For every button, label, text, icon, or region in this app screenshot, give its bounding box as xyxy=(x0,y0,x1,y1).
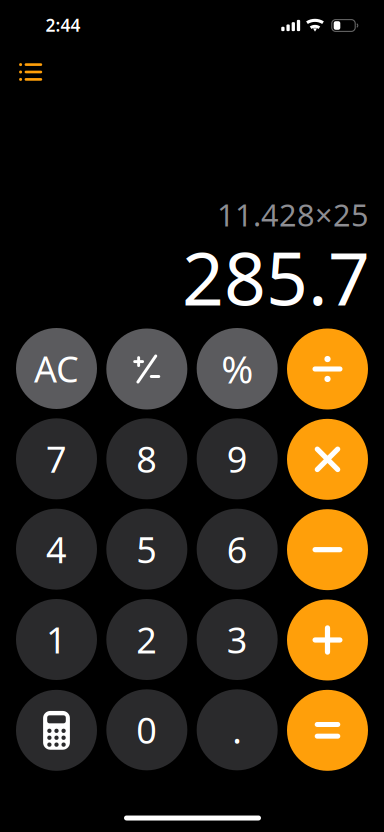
button[interactable]: Plus Minus xyxy=(106,328,187,409)
button[interactable]: 3 xyxy=(197,599,278,680)
staticText: 3 xyxy=(227,616,248,663)
button[interactable]: Subtract xyxy=(287,509,368,590)
button[interactable]: Divide xyxy=(287,328,368,409)
button[interactable]: 1 xyxy=(16,599,97,680)
button[interactable]: 8 xyxy=(106,418,187,499)
staticText: % xyxy=(221,343,253,394)
staticText: 8 xyxy=(136,435,157,483)
button[interactable]: Add xyxy=(287,599,368,680)
staticText: 5 xyxy=(136,525,157,573)
button[interactable]: % xyxy=(197,328,278,409)
staticText: 2:44 xyxy=(45,13,80,36)
staticText: 1 xyxy=(46,616,67,663)
button[interactable]: 2 xyxy=(106,599,187,680)
staticText: AC xyxy=(34,345,79,392)
staticText: 2 xyxy=(136,616,157,663)
staticText: 285.7 xyxy=(182,228,370,326)
staticText: . xyxy=(232,706,242,754)
staticText: 9 xyxy=(227,435,248,483)
button[interactable]: Calculator xyxy=(16,690,97,771)
button[interactable]: 9 xyxy=(197,418,278,499)
button[interactable]: Equals xyxy=(287,690,368,771)
button[interactable]: 7 xyxy=(16,418,97,499)
staticText: 6 xyxy=(227,525,248,573)
staticText: 4 xyxy=(46,525,67,573)
button[interactable]: Multiply xyxy=(287,419,368,500)
staticText: 7 xyxy=(46,435,67,483)
button[interactable]: 6 xyxy=(197,509,278,590)
button[interactable]: 0 xyxy=(106,689,187,770)
button[interactable]: 4 xyxy=(16,509,97,590)
staticText: 0 xyxy=(136,706,157,754)
button[interactable]: . xyxy=(197,689,278,770)
button[interactable]: 5 xyxy=(106,509,187,590)
staticText: 11.428×25 xyxy=(217,194,369,235)
button[interactable]: AC xyxy=(16,328,97,409)
button[interactable]: History xyxy=(9,51,53,93)
